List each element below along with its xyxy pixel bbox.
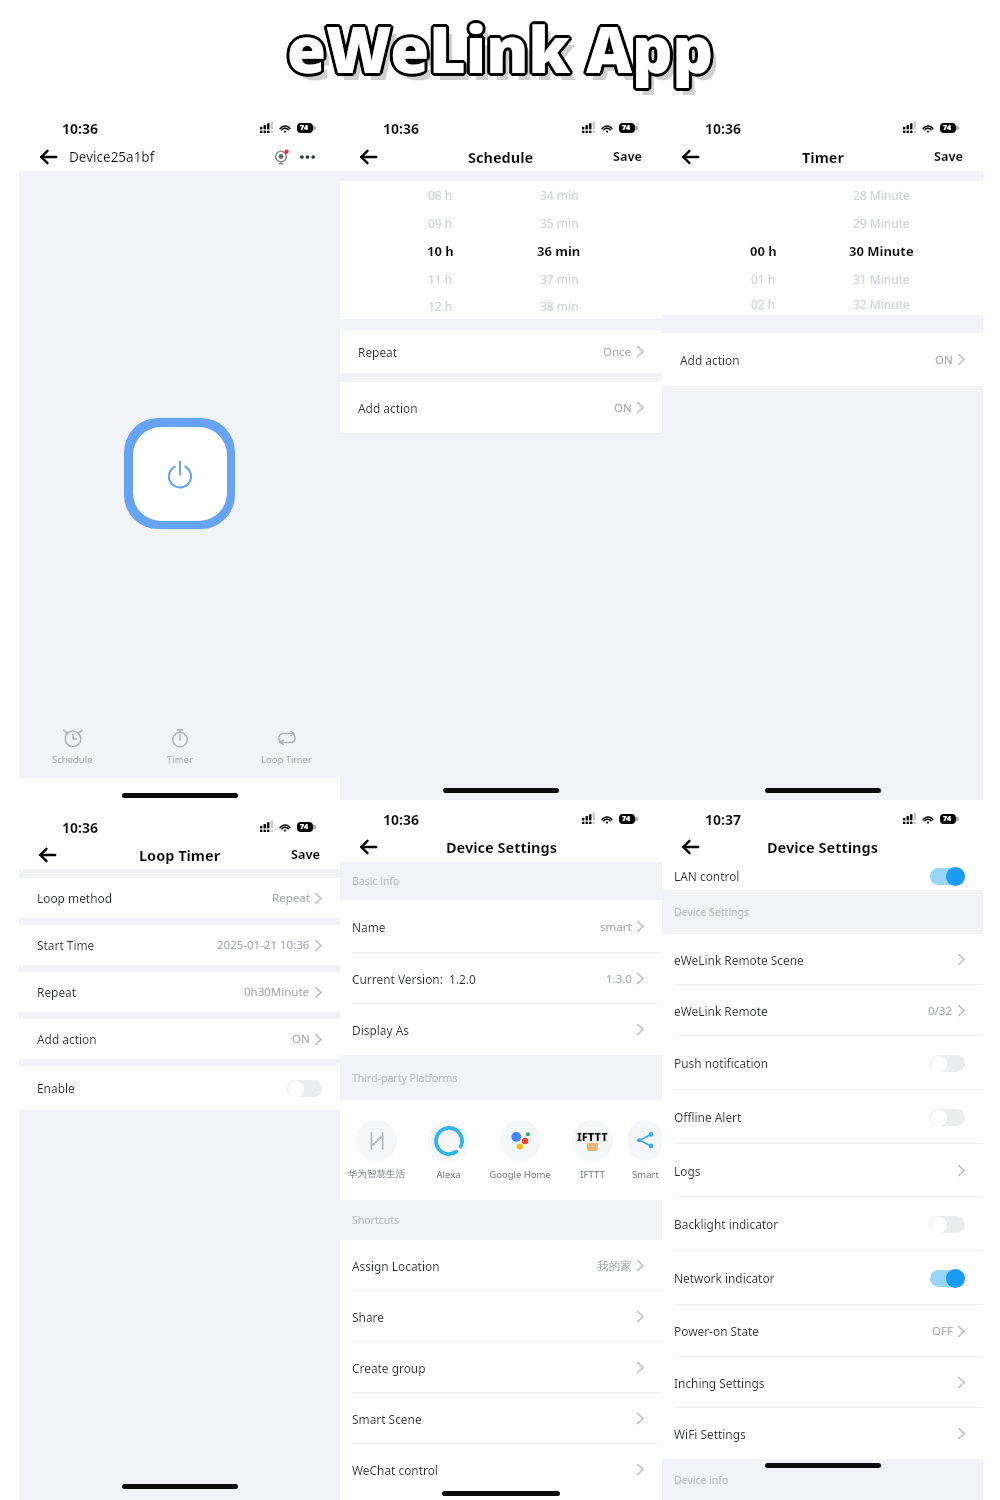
staticText: IFTTT <box>577 1129 608 1144</box>
staticText: Inching Settings <box>674 1375 765 1391</box>
button[interactable]: Google Home <box>484 1120 556 1181</box>
button[interactable]: 华为智慧生活 <box>340 1120 412 1180</box>
staticText: 10:36 <box>383 119 419 138</box>
button[interactable]: Offline Alert <box>662 1090 983 1144</box>
button[interactable]: Start Time <box>19 925 340 965</box>
button[interactable]: eWeLink Remote Scene <box>662 934 983 985</box>
staticText: Save <box>291 846 320 863</box>
button[interactable]: Switch off <box>930 1108 965 1127</box>
button[interactable]: IFTTT <box>556 1120 628 1181</box>
staticText: Device info <box>674 1473 729 1487</box>
staticText: Alexa <box>436 1168 461 1181</box>
staticText: Name <box>352 919 386 935</box>
button[interactable]: Switch on <box>930 867 965 886</box>
staticText: Loop Timer <box>261 753 312 766</box>
button[interactable]: Power toggle <box>124 418 235 529</box>
button[interactable]: Inching Settings <box>662 1357 983 1408</box>
staticText: ON <box>614 400 632 416</box>
button[interactable]: Back <box>35 844 60 866</box>
staticText: 28 Minute <box>853 187 910 203</box>
staticText: 华为智慧生活 <box>348 1168 405 1180</box>
button[interactable]: Back <box>678 146 703 168</box>
button[interactable]: Back <box>36 146 61 168</box>
staticText: 36 min <box>537 242 581 260</box>
button[interactable]: Assign Location <box>340 1240 662 1291</box>
button[interactable]: Save <box>287 842 324 867</box>
button[interactable]: Name <box>340 900 662 953</box>
button[interactable]: Smart <box>628 1120 662 1181</box>
staticText: Loop Timer <box>139 845 221 865</box>
button[interactable]: Loop Timer <box>233 723 340 770</box>
button[interactable]: eWeLink Remote <box>662 985 983 1036</box>
button[interactable]: Schedule <box>19 723 126 770</box>
button[interactable]: Back <box>356 146 381 168</box>
staticText: eWeLink App <box>287 9 714 95</box>
staticText: Timer <box>802 147 844 167</box>
button[interactable]: Switch off <box>287 1079 322 1098</box>
button[interactable]: Camera <box>272 148 290 166</box>
staticText: IFTTT <box>580 1168 605 1181</box>
button[interactable]: Smart Scene <box>340 1393 662 1444</box>
staticText: Current Version: 1.2.0 <box>352 971 476 987</box>
staticText: Repeat <box>272 890 310 906</box>
staticText: eWeLink App <box>286 3 713 89</box>
staticText: Device Settings <box>767 837 878 857</box>
button[interactable]: Add action <box>662 333 983 386</box>
button[interactable]: Logs <box>662 1144 983 1197</box>
staticText: eWeLink App <box>284 6 711 92</box>
staticText: Smart Scene <box>352 1411 422 1427</box>
staticText: Device Settings <box>446 837 557 857</box>
button[interactable]: Backlight indicator <box>662 1197 983 1251</box>
staticText: Add action <box>680 352 740 368</box>
button[interactable]: Repeat <box>19 972 340 1012</box>
button[interactable]: Add action <box>340 382 662 433</box>
button[interactable]: Back <box>678 836 703 858</box>
button[interactable]: Back <box>356 836 381 858</box>
button[interactable]: Repeat <box>340 330 662 373</box>
staticText: eWeLink App <box>286 9 713 95</box>
button[interactable]: Switch off <box>930 1054 965 1073</box>
button[interactable]: Add action <box>19 1019 340 1059</box>
staticText: smart <box>600 919 632 935</box>
staticText: eWeLink App <box>289 8 716 94</box>
button[interactable]: Switch on <box>930 1269 965 1288</box>
button[interactable]: Save <box>609 144 646 169</box>
button[interactable]: Enable <box>19 1066 340 1110</box>
staticText: 2025-01-21 10:36 <box>217 937 310 953</box>
staticText: Google Home <box>489 1168 551 1181</box>
button[interactable]: Loop method <box>19 878 340 918</box>
staticText: Device25a1bf <box>69 148 155 166</box>
button[interactable]: Save <box>930 144 967 169</box>
button[interactable]: Alexa <box>412 1120 484 1181</box>
button[interactable]: LAN control <box>662 862 983 890</box>
button[interactable]: Timer <box>126 723 233 770</box>
staticText: eWeLink App <box>287 6 714 92</box>
staticText: 10:36 <box>62 119 98 138</box>
staticText: 0h30Minute <box>244 984 310 1000</box>
staticText: Shortcuts <box>352 1213 400 1227</box>
staticText: eWeLink App <box>290 7 717 93</box>
button[interactable]: Switch off <box>930 1215 965 1234</box>
button[interactable]: Current Version: 1.2.0 <box>340 953 662 1004</box>
button[interactable]: Network indicator <box>662 1251 983 1305</box>
button[interactable]: Create group <box>340 1342 662 1393</box>
button[interactable]: Power-on State <box>662 1305 983 1357</box>
staticText: eWeLink App <box>290 6 717 92</box>
staticText: 08 h <box>428 187 453 203</box>
staticText: 31 Minute <box>853 271 910 287</box>
staticText: WiFi Settings <box>674 1426 746 1442</box>
staticText: Display As <box>352 1022 409 1038</box>
staticText: 74 <box>943 814 952 824</box>
button[interactable]: WiFi Settings <box>662 1408 983 1459</box>
staticText: 74 <box>622 123 631 133</box>
staticText: Add action <box>37 1031 97 1047</box>
button[interactable]: More options <box>298 153 317 161</box>
staticText: Once <box>603 344 632 360</box>
button[interactable]: WeChat control <box>340 1444 662 1495</box>
staticText: 35 min <box>540 215 579 231</box>
button[interactable]: Display As <box>340 1004 662 1055</box>
staticText: Save <box>613 148 642 165</box>
button[interactable]: Share <box>340 1291 662 1342</box>
button[interactable]: Push notification <box>662 1036 983 1090</box>
staticText: Save <box>934 148 963 165</box>
